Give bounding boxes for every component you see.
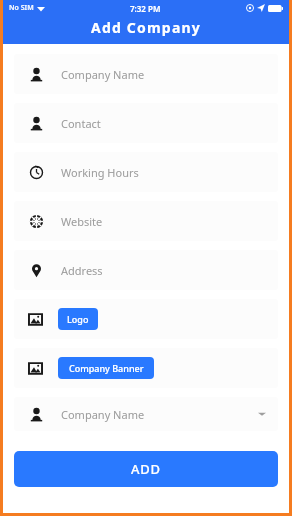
staticText: Add Company bbox=[91, 18, 201, 37]
staticText: 7:32 PM bbox=[130, 3, 161, 14]
staticText: Logo bbox=[67, 313, 89, 325]
button[interactable]: Address bbox=[14, 250, 278, 290]
staticText: Website bbox=[61, 214, 103, 229]
button[interactable]: Website bbox=[14, 201, 278, 241]
staticText: Contact bbox=[61, 116, 101, 131]
staticText: Company Name bbox=[61, 407, 145, 422]
staticText: ADD bbox=[131, 460, 161, 478]
button[interactable]: Logo bbox=[58, 308, 98, 330]
staticText: Address bbox=[61, 263, 103, 278]
button[interactable]: Company Name bbox=[14, 54, 278, 94]
button[interactable]: ADD bbox=[14, 451, 278, 487]
button[interactable]: Company Name bbox=[14, 397, 278, 431]
button[interactable]: Logo bbox=[14, 299, 278, 339]
button[interactable]: Company Banner bbox=[14, 348, 278, 388]
button[interactable]: Contact bbox=[14, 103, 278, 143]
staticText: Working Hours bbox=[61, 165, 139, 180]
staticText: No SIM bbox=[9, 3, 34, 13]
other: Open dropdown bbox=[258, 410, 266, 418]
staticText: Company Name bbox=[61, 67, 145, 82]
button[interactable]: Company Banner bbox=[58, 357, 154, 379]
staticText: Company Banner bbox=[69, 362, 144, 374]
button[interactable]: Working Hours bbox=[14, 152, 278, 192]
